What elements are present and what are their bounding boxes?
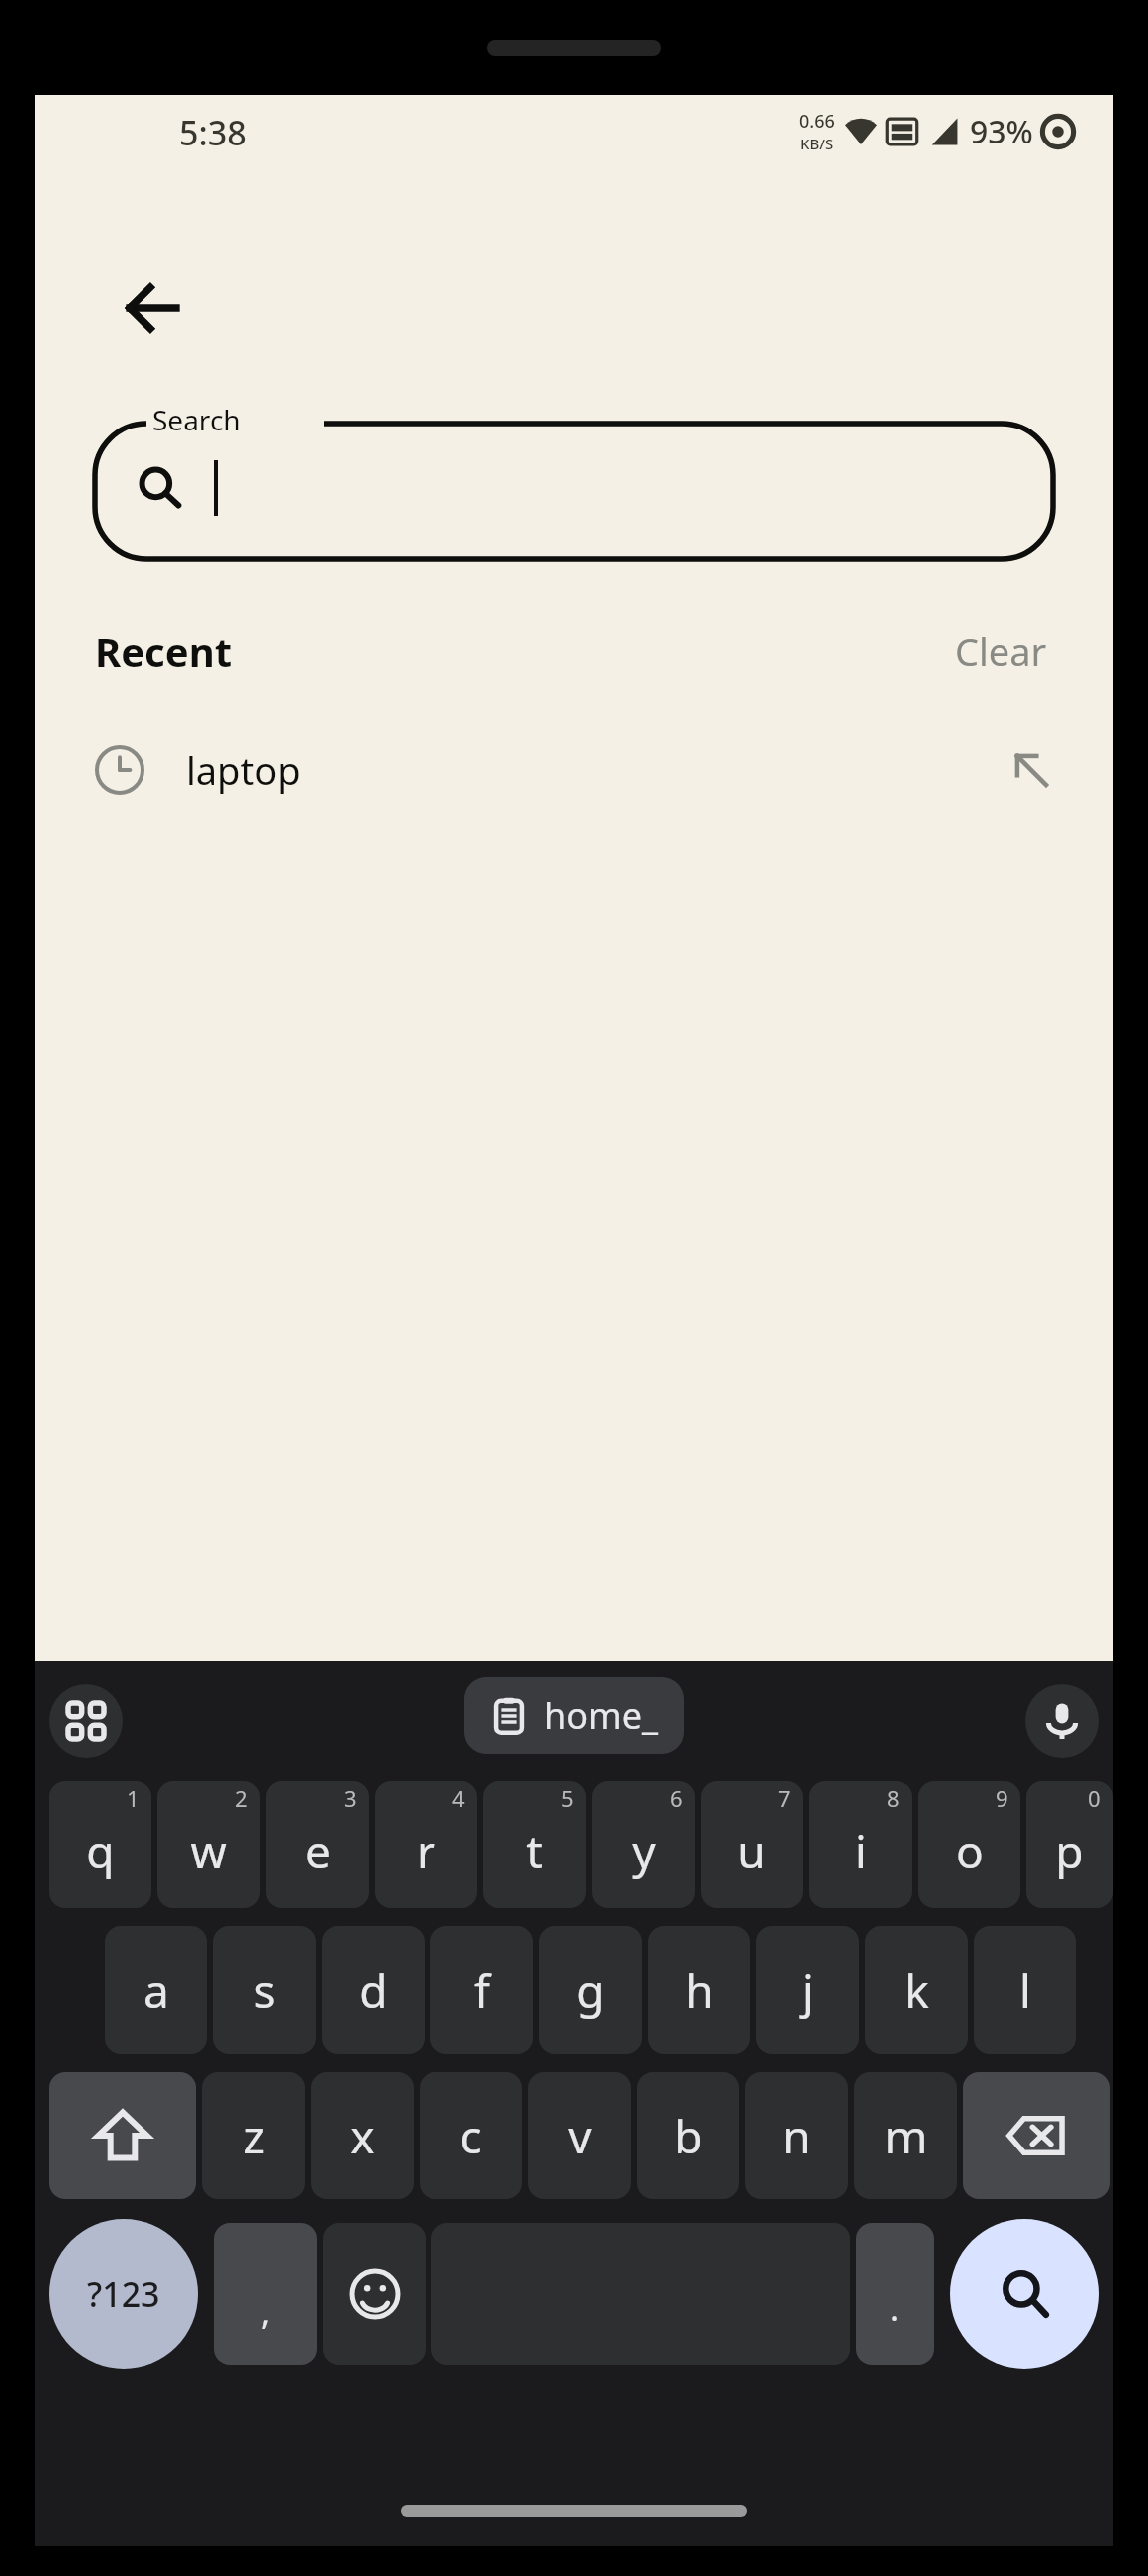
staticText: d bbox=[359, 1959, 388, 2022]
button[interactable]: Backspace bbox=[963, 2072, 1110, 2199]
staticText: m bbox=[884, 2105, 928, 2167]
staticText: a bbox=[143, 1959, 169, 2022]
staticText: Search bbox=[152, 401, 241, 438]
staticText: 6 bbox=[670, 1783, 683, 1813]
button[interactable]: Clear bbox=[949, 619, 1053, 683]
staticText: c bbox=[459, 2105, 482, 2167]
staticText: f bbox=[474, 1959, 490, 2022]
staticText: b bbox=[674, 2105, 703, 2167]
button[interactable]: n bbox=[745, 2072, 848, 2199]
button[interactable]: v bbox=[528, 2072, 631, 2199]
button[interactable]: z bbox=[202, 2072, 305, 2199]
staticText: home_ bbox=[544, 1691, 658, 1740]
button[interactable]: x bbox=[311, 2072, 414, 2199]
button[interactable]: ?123 bbox=[49, 2219, 198, 2369]
staticText: 0.66 bbox=[799, 109, 835, 134]
staticText: Clear bbox=[955, 625, 1047, 677]
staticText: r bbox=[417, 1820, 435, 1882]
staticText: p bbox=[1055, 1820, 1084, 1882]
staticText: 9 bbox=[996, 1783, 1008, 1813]
staticText: ?123 bbox=[87, 2271, 160, 2317]
button[interactable]: . bbox=[856, 2223, 934, 2365]
button[interactable]: home_ bbox=[464, 1677, 684, 1754]
staticText: laptop bbox=[186, 744, 301, 796]
staticText: v bbox=[568, 2105, 592, 2167]
staticText: i bbox=[855, 1820, 867, 1882]
button[interactable]: Voice input bbox=[1025, 1684, 1099, 1758]
button[interactable]: m bbox=[854, 2072, 957, 2199]
staticText: 7 bbox=[778, 1783, 791, 1813]
staticText: e bbox=[305, 1820, 331, 1882]
button[interactable]: , bbox=[214, 2223, 317, 2365]
staticText: w bbox=[190, 1820, 227, 1882]
button[interactable]: Emoji bbox=[323, 2223, 426, 2365]
button[interactable]: p bbox=[1026, 1781, 1113, 1908]
button[interactable]: Back bbox=[107, 262, 198, 354]
staticText: 3 bbox=[344, 1783, 357, 1813]
staticText: 1 bbox=[127, 1783, 140, 1813]
staticText: g bbox=[576, 1959, 605, 2022]
staticText: 0 bbox=[1088, 1783, 1101, 1813]
button[interactable]: s bbox=[213, 1926, 316, 2054]
button[interactable]: t bbox=[483, 1781, 586, 1908]
button[interactable]: y bbox=[592, 1781, 695, 1908]
staticText: n bbox=[782, 2105, 811, 2167]
button[interactable]: f bbox=[430, 1926, 533, 2054]
button[interactable]: i bbox=[809, 1781, 912, 1908]
button[interactable]: u bbox=[701, 1781, 803, 1908]
staticText: x bbox=[350, 2105, 375, 2167]
button[interactable]: h bbox=[648, 1926, 750, 2054]
staticText: 4 bbox=[452, 1783, 465, 1813]
staticText: 5 bbox=[561, 1783, 574, 1813]
staticText: t bbox=[526, 1820, 543, 1882]
button[interactable]: l bbox=[974, 1926, 1076, 2054]
staticText: u bbox=[737, 1820, 766, 1882]
button[interactable]: e bbox=[266, 1781, 369, 1908]
staticText: . bbox=[890, 2285, 900, 2331]
button[interactable]: Search bbox=[950, 2219, 1099, 2369]
button[interactable]: laptop bbox=[35, 722, 1113, 818]
button[interactable]: Keyboard options bbox=[49, 1684, 123, 1758]
button[interactable]: q bbox=[49, 1781, 151, 1908]
button[interactable]: k bbox=[865, 1926, 968, 2054]
button[interactable]: c bbox=[420, 2072, 522, 2199]
staticText: 5:38 bbox=[179, 110, 247, 155]
button[interactable]: b bbox=[637, 2072, 739, 2199]
staticText: y bbox=[632, 1820, 656, 1882]
staticText: 8 bbox=[887, 1783, 900, 1813]
staticText: , bbox=[261, 2289, 271, 2335]
button[interactable]: j bbox=[756, 1926, 859, 2054]
staticText: l bbox=[1019, 1959, 1031, 2022]
button[interactable]: d bbox=[322, 1926, 425, 2054]
button[interactable]: a bbox=[105, 1926, 207, 2054]
button[interactable]: g bbox=[539, 1926, 642, 2054]
staticText: h bbox=[685, 1959, 714, 2022]
button[interactable]: r bbox=[375, 1781, 477, 1908]
button[interactable]: o bbox=[918, 1781, 1020, 1908]
staticText: s bbox=[253, 1959, 276, 2022]
staticText: o bbox=[956, 1820, 984, 1882]
staticText: z bbox=[243, 2105, 265, 2167]
button[interactable]: w bbox=[157, 1781, 260, 1908]
button[interactable]: Search bbox=[95, 402, 1053, 559]
staticText: q bbox=[86, 1820, 115, 1882]
staticText: j bbox=[802, 1959, 814, 2022]
button[interactable]: Shift bbox=[49, 2072, 196, 2199]
staticText: k bbox=[904, 1959, 929, 2022]
staticText: 2 bbox=[235, 1783, 248, 1813]
staticText: 93% bbox=[970, 110, 1033, 153]
staticText: Recent bbox=[95, 624, 232, 678]
staticText: KB/S bbox=[800, 134, 834, 153]
